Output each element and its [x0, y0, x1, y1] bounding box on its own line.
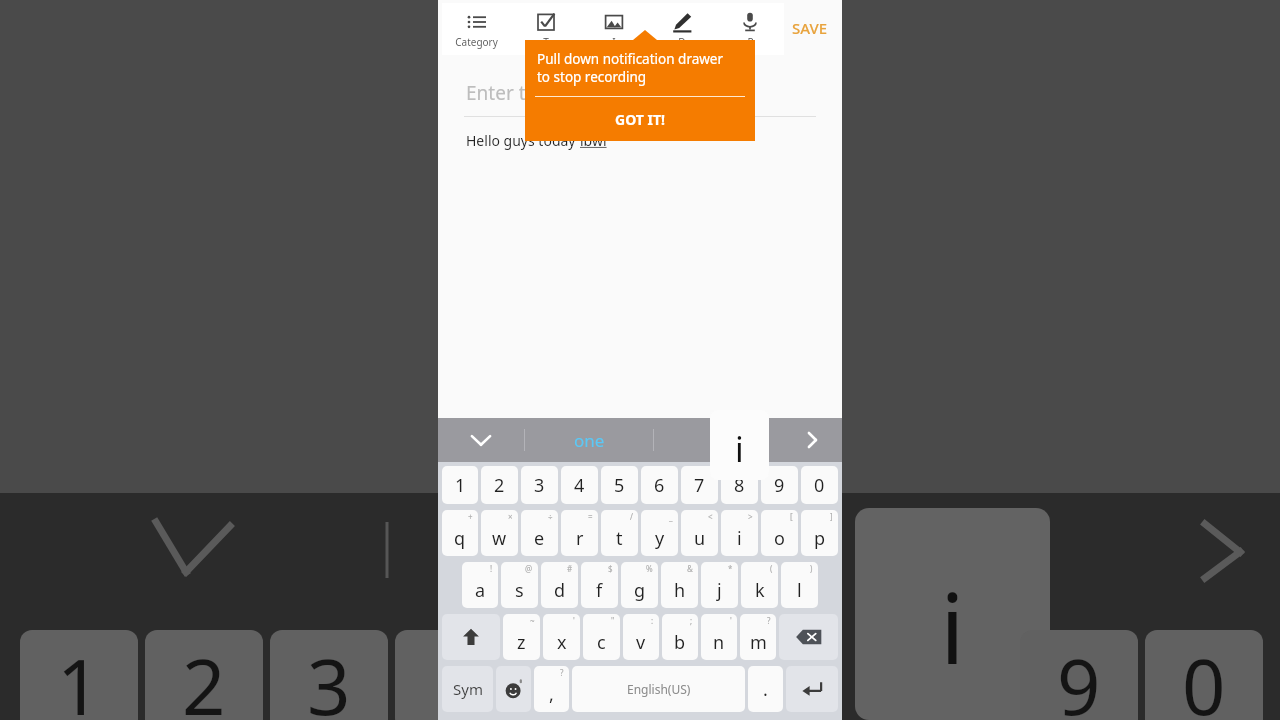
button[interactable]: ?: [740, 614, 776, 660]
button[interactable]: ": [583, 614, 620, 660]
button[interactable]: @: [501, 562, 538, 608]
button[interactable]: ?: [534, 666, 569, 712]
staticText: m: [750, 630, 767, 655]
staticText: %: [646, 563, 653, 574]
button[interactable]: SAVE: [792, 18, 828, 38]
button[interactable]: (: [741, 562, 778, 608]
button[interactable]: &: [661, 562, 698, 608]
staticText: Enter title: [466, 80, 553, 106]
button[interactable]: [654, 418, 782, 462]
button[interactable]: ~: [503, 614, 540, 660]
staticText: I: [612, 35, 616, 49]
button[interactable]: 5: [601, 466, 638, 504]
staticText: @: [525, 563, 533, 574]
button[interactable]: .: [748, 666, 783, 712]
button[interactable]: :: [623, 614, 659, 660]
staticText: one: [574, 429, 605, 452]
button[interactable]: *: [701, 562, 738, 608]
staticText: [: [790, 511, 793, 522]
button[interactable]: Text: [511, 3, 580, 55]
button[interactable]: ×: [481, 510, 518, 556]
staticText: 3: [307, 634, 351, 720]
button[interactable]: $: [581, 562, 618, 608]
button[interactable]: %: [621, 562, 658, 608]
staticText: ;: [690, 615, 693, 626]
staticText: s: [515, 578, 524, 603]
button[interactable]: More suggestions: [782, 418, 842, 462]
button[interactable]: [: [761, 510, 798, 556]
button[interactable]: =: [561, 510, 598, 556]
staticText: j: [717, 578, 722, 603]
staticText: R: [747, 35, 754, 49]
button[interactable]: 6: [641, 466, 678, 504]
staticText: l: [797, 578, 802, 603]
staticText: =: [588, 511, 593, 522]
button[interactable]: ): [781, 562, 818, 608]
staticText: ": [611, 615, 615, 626]
staticText: >: [748, 511, 753, 522]
button[interactable]: Category: [442, 3, 511, 55]
staticText: GOT IT!: [615, 110, 665, 129]
staticText: ~: [530, 615, 535, 626]
staticText: Category: [455, 35, 498, 49]
button[interactable]: one: [525, 418, 653, 462]
button[interactable]: Emoji: [496, 666, 531, 712]
button[interactable]: Record: [716, 3, 784, 55]
button[interactable]: 1: [442, 466, 478, 504]
staticText: g: [634, 578, 646, 603]
staticText: t: [616, 526, 623, 551]
staticText: e: [534, 526, 545, 551]
button[interactable]: <: [681, 510, 718, 556]
staticText: f: [596, 578, 603, 603]
button[interactable]: Hide keyboard: [438, 418, 524, 462]
staticText: a: [475, 578, 486, 603]
button[interactable]: 8: [721, 466, 758, 504]
staticText: z: [517, 630, 526, 655]
button[interactable]: GOT IT!: [525, 97, 755, 141]
button[interactable]: 7: [681, 466, 718, 504]
staticText: (: [770, 563, 773, 574]
staticText: Sym: [453, 679, 483, 699]
staticText: u: [694, 526, 706, 551]
button[interactable]: Sym: [442, 666, 493, 712]
staticText: 0: [1182, 634, 1226, 720]
staticText: b: [674, 630, 686, 655]
staticText: ': [573, 615, 575, 626]
button[interactable]: English(US): [572, 666, 745, 712]
button[interactable]: 3: [521, 466, 558, 504]
button[interactable]: Image: [580, 3, 648, 55]
button[interactable]: ÷: [521, 510, 558, 556]
staticText: /: [630, 511, 633, 522]
button[interactable]: >: [721, 510, 758, 556]
button[interactable]: ': [701, 614, 737, 660]
staticText: ): [810, 563, 813, 574]
button[interactable]: #: [541, 562, 578, 608]
staticText: h: [674, 578, 686, 603]
staticText: 6: [654, 473, 665, 498]
button[interactable]: /: [601, 510, 638, 556]
staticText: ]: [830, 511, 833, 522]
button[interactable]: ;: [662, 614, 698, 660]
staticText: i: [735, 426, 744, 472]
staticText: ,: [549, 682, 554, 707]
button[interactable]: 2: [481, 466, 518, 504]
staticText: ibwi: [580, 131, 607, 150]
button[interactable]: +: [442, 510, 478, 556]
staticText: o: [774, 526, 785, 551]
button[interactable]: !: [462, 562, 498, 608]
button[interactable]: ': [543, 614, 580, 660]
button[interactable]: 9: [761, 466, 798, 504]
button[interactable]: 4: [561, 466, 598, 504]
staticText: 3: [534, 473, 545, 498]
staticText: ×: [508, 511, 513, 522]
staticText: !: [490, 563, 493, 574]
button[interactable]: _: [641, 510, 678, 556]
button[interactable]: ]: [801, 510, 838, 556]
staticText: D: [678, 35, 686, 49]
button[interactable]: Draw: [648, 3, 716, 55]
button[interactable]: 0: [801, 466, 838, 504]
button[interactable]: Enter: [786, 666, 838, 712]
button[interactable]: Shift: [442, 614, 500, 660]
staticText: w: [492, 526, 507, 551]
button[interactable]: Backspace: [779, 614, 838, 660]
